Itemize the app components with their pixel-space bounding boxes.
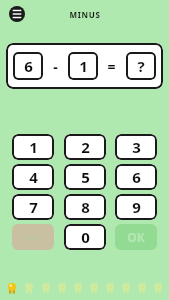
staticText: 9 bbox=[132, 197, 141, 217]
staticText: 1 bbox=[29, 137, 38, 157]
staticText: 8 bbox=[81, 197, 90, 217]
staticText: 4 bbox=[29, 167, 38, 187]
button[interactable]: 8 bbox=[64, 194, 106, 220]
button[interactable]: 9 bbox=[115, 194, 157, 220]
button[interactable]: Backspace bbox=[12, 224, 54, 250]
button[interactable]: 4 bbox=[12, 164, 54, 190]
button[interactable]: 5 bbox=[64, 164, 106, 190]
staticText: OK bbox=[127, 229, 145, 245]
staticText: MINUS bbox=[69, 9, 101, 20]
staticText: ? bbox=[137, 56, 145, 76]
staticText: 7 bbox=[29, 197, 38, 217]
staticText: <<< bbox=[24, 230, 43, 245]
staticText: 0 bbox=[81, 227, 90, 247]
button[interactable]: 0 bbox=[64, 224, 106, 250]
button[interactable]: 1 bbox=[12, 134, 54, 160]
staticText: 5 bbox=[81, 167, 90, 187]
button[interactable]: Menu bbox=[5, 2, 29, 26]
staticText: 6 bbox=[132, 167, 141, 187]
button[interactable]: 7 bbox=[12, 194, 54, 220]
staticText: - bbox=[53, 57, 58, 76]
staticText: 3 bbox=[132, 137, 141, 157]
staticText: = bbox=[107, 57, 116, 76]
staticText: 2 bbox=[81, 137, 90, 157]
staticText: 1 bbox=[79, 56, 88, 76]
button[interactable]: 2 bbox=[64, 134, 106, 160]
button[interactable]: OK bbox=[115, 224, 157, 250]
staticText: 6 bbox=[24, 56, 33, 76]
button[interactable]: 3 bbox=[115, 134, 157, 160]
button[interactable]: 6 bbox=[115, 164, 157, 190]
